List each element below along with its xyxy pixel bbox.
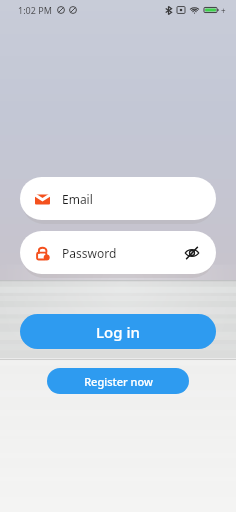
staticText: Register now <box>84 374 153 389</box>
button[interactable]: Email <box>20 177 216 220</box>
button[interactable]: Register now <box>47 368 189 394</box>
staticText: Log in <box>96 322 140 342</box>
staticText: Password <box>62 245 117 261</box>
staticText: + <box>221 5 226 16</box>
button[interactable]: Log in <box>20 314 216 349</box>
staticText: 1:02 PM <box>18 4 52 16</box>
button[interactable]: Show password <box>181 242 203 264</box>
button[interactable]: Password <box>20 231 216 274</box>
staticText: Email <box>62 191 93 207</box>
